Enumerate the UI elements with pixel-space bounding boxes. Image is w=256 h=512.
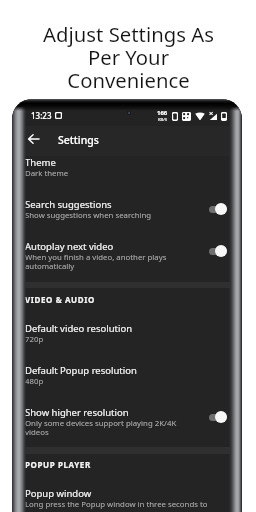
- staticText: 480p: [25, 376, 44, 387]
- staticText: 166: [157, 109, 168, 117]
- button[interactable]: Default video resolution: [22, 322, 231, 364]
- button[interactable]: Theme: [22, 156, 231, 198]
- staticText: Settings: [58, 133, 99, 147]
- staticText: VIDEO & AUDIO: [25, 294, 95, 305]
- staticText: POPUP PLAYER: [25, 459, 91, 470]
- button[interactable]: Search suggestions: [22, 198, 231, 240]
- staticText: 13:23: [31, 110, 52, 121]
- button[interactable]: Show higher resolution: [22, 406, 231, 447]
- staticText: Search suggestions: [25, 198, 112, 211]
- staticText: Dark theme: [25, 168, 69, 179]
- staticText: Show suggestions when searching: [25, 210, 152, 221]
- button[interactable]: Popup window: [22, 487, 231, 512]
- staticText: 720p: [25, 334, 44, 345]
- staticText: Show higher resolution: [25, 406, 129, 419]
- staticText: When you finish a video, another plays a…: [25, 252, 167, 271]
- staticText: Long press the Popup window in three sec…: [25, 499, 208, 510]
- staticText: Only some devices support playing 2K/4K …: [25, 418, 177, 437]
- button[interactable]: Autoplay next video: [22, 240, 231, 282]
- staticText: Theme: [25, 156, 56, 169]
- staticText: KB/S: [158, 117, 168, 123]
- staticText: Autoplay next video: [25, 240, 114, 253]
- button[interactable]: Default Popup resolution: [22, 364, 231, 406]
- staticText: Popup window: [25, 487, 92, 500]
- button[interactable]: Back: [23, 129, 43, 149]
- staticText: Default Popup resolution: [25, 364, 137, 377]
- staticText: Default video resolution: [25, 322, 133, 335]
- staticText: Adjust Settings As Per Your Convenience: [43, 20, 214, 94]
